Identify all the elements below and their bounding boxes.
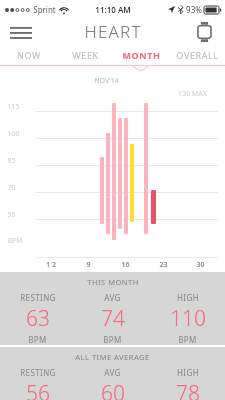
staticText: HIGH xyxy=(177,292,199,303)
button[interactable]: Watch device xyxy=(191,20,217,44)
staticText: NOW xyxy=(17,49,41,61)
staticText: 115 xyxy=(7,102,20,112)
staticText: Sprint xyxy=(33,4,56,15)
staticText: 11:10 AM xyxy=(95,4,131,15)
staticText: 85 xyxy=(7,156,16,166)
staticText: MONTH xyxy=(122,49,161,61)
button[interactable]: OVERALL xyxy=(169,45,225,65)
staticText: 70 xyxy=(7,183,16,193)
staticText: AVG xyxy=(104,367,121,378)
staticText: SUN xyxy=(118,270,133,280)
staticText: OVERALL xyxy=(176,49,219,61)
staticText: RESTING xyxy=(20,367,56,378)
staticText: SUN xyxy=(81,270,96,280)
staticText: ALL TIME AVERAGE xyxy=(75,352,150,362)
staticText: 1 2 xyxy=(46,260,56,270)
staticText: 30 xyxy=(196,260,205,270)
staticText: 130 MAX xyxy=(178,89,207,99)
staticText: 63 xyxy=(26,304,50,333)
staticText: NOV'14 xyxy=(94,76,119,86)
staticText: 93% xyxy=(186,4,202,15)
staticText: 100 xyxy=(7,129,20,139)
staticText: BPM xyxy=(28,334,47,345)
staticText: 23 xyxy=(159,260,168,270)
staticText: RESTING xyxy=(20,292,56,303)
staticText: 16 xyxy=(121,260,130,270)
button[interactable]: THIS MONTH xyxy=(0,272,225,345)
staticText: 78 xyxy=(176,379,200,400)
staticText: BPM xyxy=(178,334,197,345)
staticText: 9 xyxy=(86,260,91,270)
staticText: 74 xyxy=(101,304,125,333)
staticText: SUN xyxy=(156,270,171,280)
staticText: 56 xyxy=(26,379,50,400)
staticText: AVG xyxy=(104,292,121,303)
staticText: HEART xyxy=(84,20,142,43)
button[interactable]: Menu xyxy=(6,20,36,44)
button[interactable]: MONTH xyxy=(113,45,169,65)
button[interactable]: NOW xyxy=(0,45,57,65)
staticText: 60 xyxy=(101,379,125,400)
staticText: BPM xyxy=(7,236,23,246)
button[interactable]: ALL TIME AVERAGE xyxy=(0,347,225,400)
staticText: WEEK xyxy=(72,49,99,61)
staticText: BPM xyxy=(103,334,122,345)
staticText: 55 xyxy=(7,210,16,220)
staticText: 110 xyxy=(170,304,206,333)
staticText: SUN xyxy=(193,270,208,280)
staticText: THIS MONTH xyxy=(87,277,139,287)
staticText: HIGH xyxy=(177,367,199,378)
staticText: SUN xyxy=(43,270,58,280)
button[interactable]: WEEK xyxy=(57,45,113,65)
